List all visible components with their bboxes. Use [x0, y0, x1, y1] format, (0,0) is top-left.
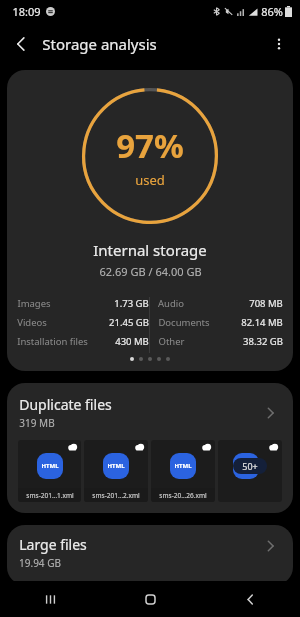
button[interactable]: Large files [7, 525, 293, 585]
staticText: Audio [158, 297, 184, 310]
staticText: HTML [174, 462, 192, 470]
staticText: sms-201…1.xml [26, 491, 74, 500]
button[interactable]: HTML [84, 440, 148, 502]
staticText: 430 MB [115, 335, 149, 348]
button[interactable]: 97% [7, 70, 293, 371]
staticText: Large files [19, 535, 87, 554]
button[interactable]: Open [259, 535, 281, 557]
staticText: 82.14 MB [241, 316, 283, 329]
button[interactable]: Recent apps [0, 581, 100, 617]
staticText: 21.45 GB [109, 316, 149, 329]
staticText: Installation files [17, 335, 88, 348]
staticText: 18:09 [12, 4, 41, 19]
staticText: Internal storage [93, 240, 207, 260]
staticText: Duplicate files [19, 395, 112, 414]
staticText: sms-201…2.xml [92, 491, 140, 500]
staticText: used [135, 171, 165, 189]
staticText: sms-20…26.xml [159, 491, 207, 500]
staticText: 50+ [242, 460, 258, 472]
staticText: HTML [41, 462, 59, 470]
staticText: 1.73 GB [114, 297, 149, 310]
button[interactable]: Duplicate files [7, 383, 293, 513]
button[interactable]: Back [0, 23, 42, 65]
staticText: 19.94 GB [19, 556, 61, 570]
staticText: 38.32 GB [243, 335, 283, 348]
staticText: Videos [17, 316, 47, 329]
staticText: 62.69 GB / 64.00 GB [99, 264, 202, 279]
button[interactable]: HTML [18, 440, 81, 502]
button[interactable]: Back [200, 581, 300, 617]
staticText: 97% [116, 123, 184, 168]
staticText: HTML [107, 462, 125, 470]
staticText: 86% [261, 4, 283, 19]
staticText: Documents [158, 316, 210, 329]
staticText: Other [158, 335, 185, 348]
button[interactable]: 50+ [218, 440, 282, 502]
button[interactable]: HTML [151, 440, 215, 502]
button[interactable]: Open [259, 402, 281, 424]
staticText: Images [17, 297, 51, 310]
staticText: Storage analysis [42, 34, 157, 54]
button[interactable]: More options [258, 23, 300, 65]
staticText: 319 MB [19, 416, 55, 430]
staticText: 708 MB [249, 297, 283, 310]
button[interactable]: Home [100, 581, 200, 617]
